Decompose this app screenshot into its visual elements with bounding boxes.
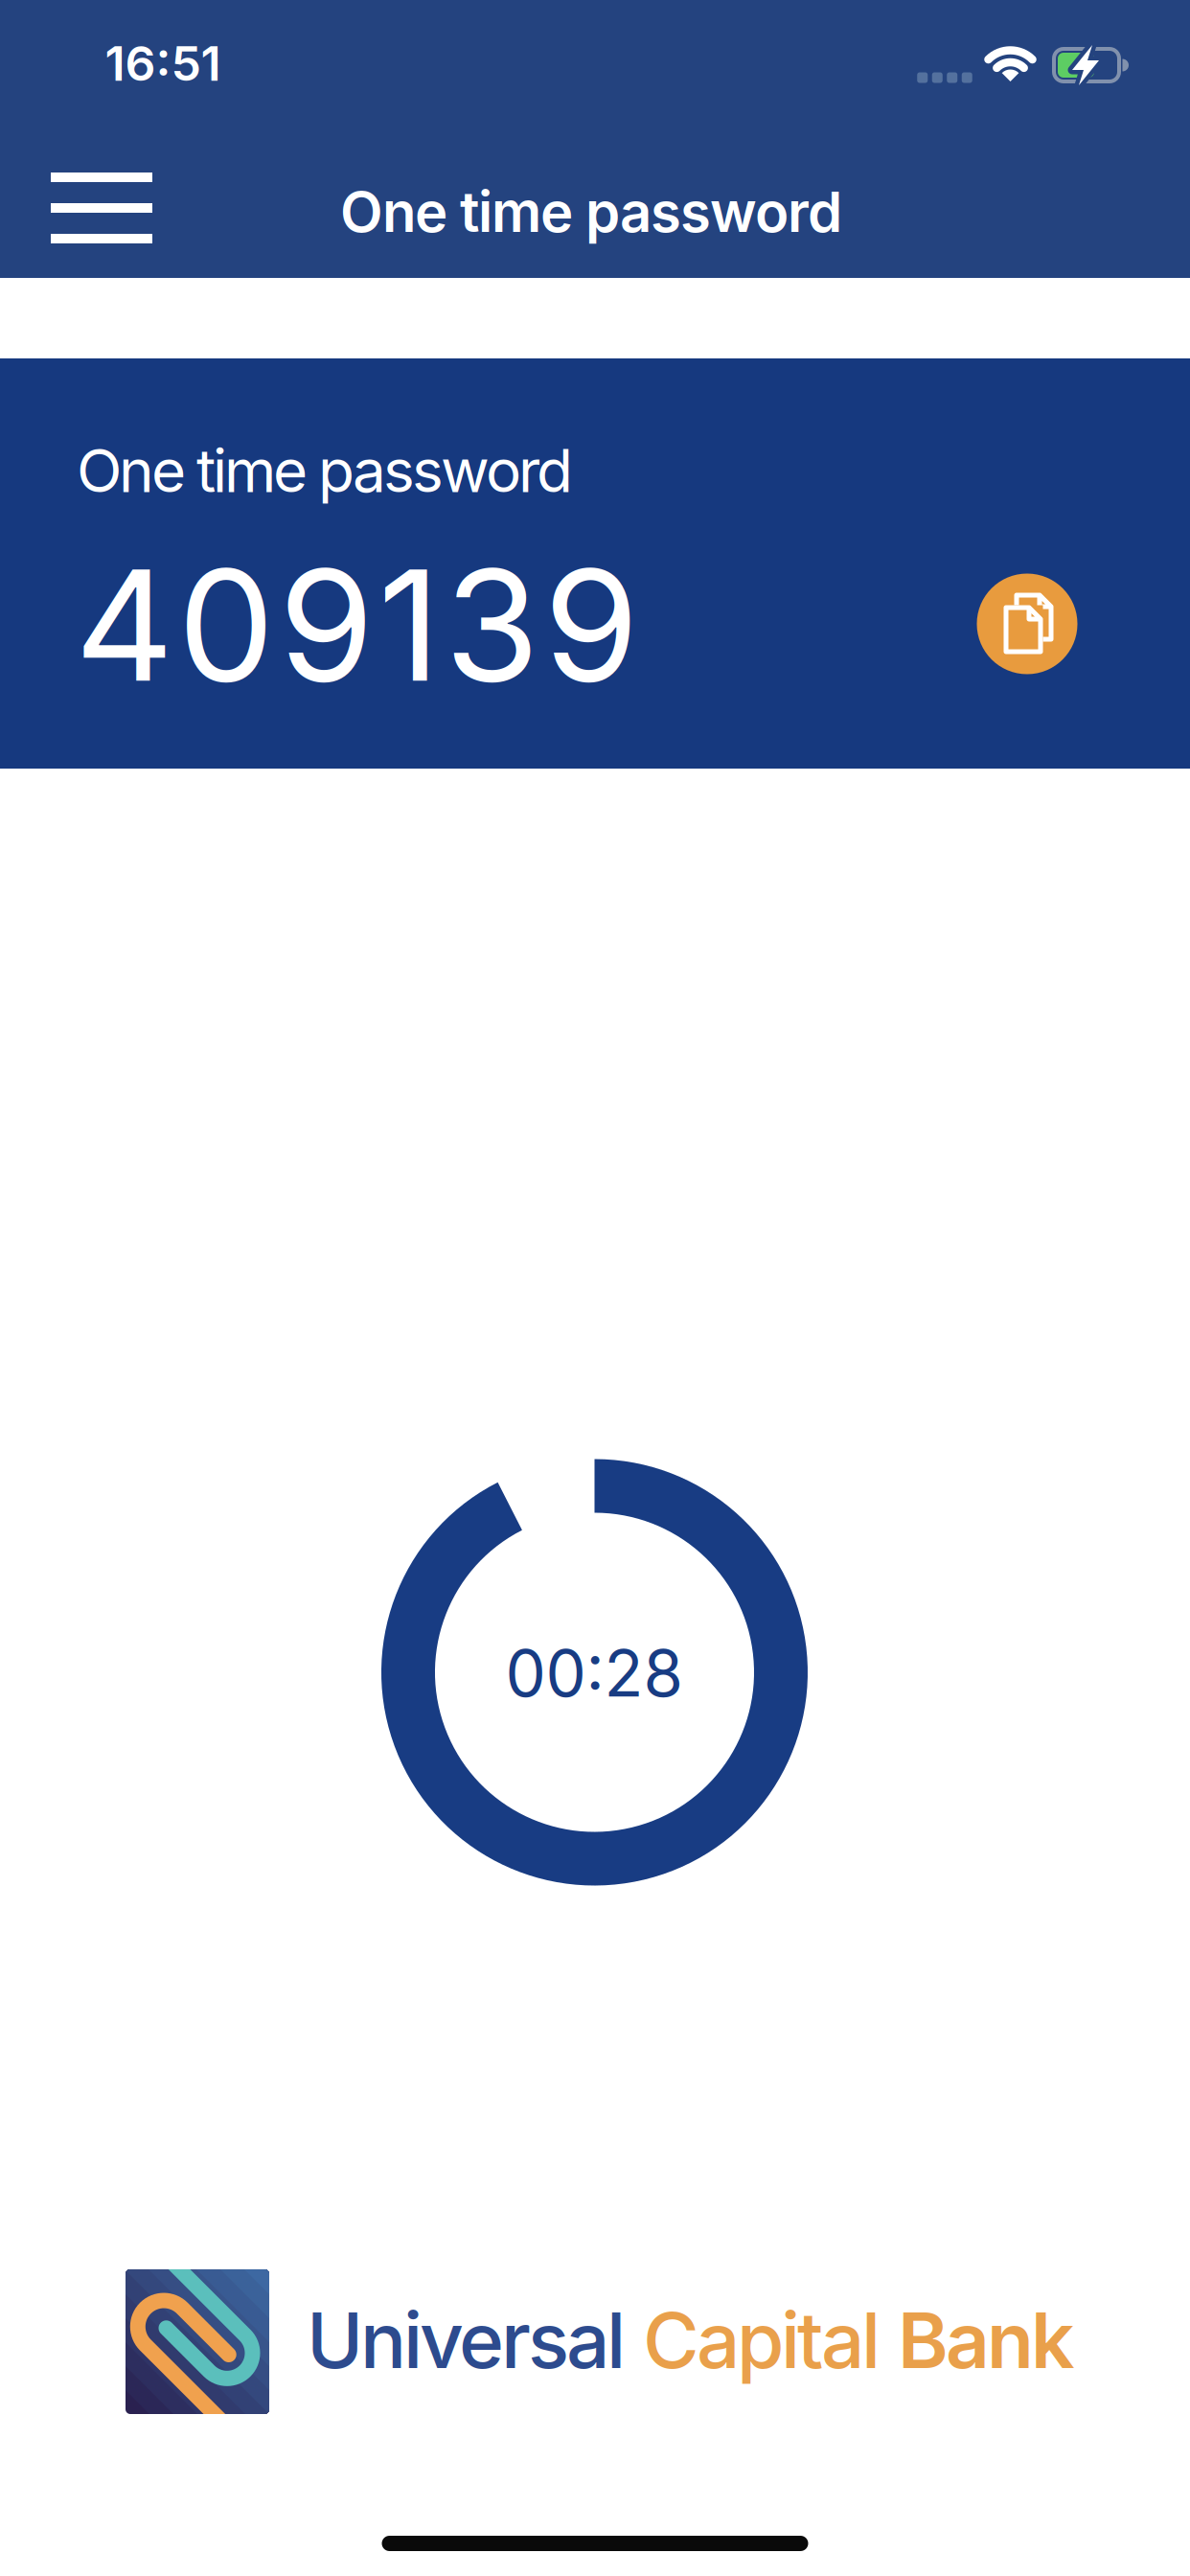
staticText: One time password <box>77 435 573 506</box>
button[interactable]: Copy password <box>977 574 1077 674</box>
staticText: Universal <box>307 2294 643 2387</box>
staticText: One time password <box>340 178 842 245</box>
staticText: 16:51 <box>105 34 221 92</box>
button[interactable]: Menu <box>51 172 152 243</box>
staticText: Capital <box>643 2294 898 2387</box>
staticText: Bank <box>898 2294 1075 2387</box>
staticText: 00:28 <box>505 1634 683 1712</box>
staticText: 409139 <box>75 532 639 718</box>
